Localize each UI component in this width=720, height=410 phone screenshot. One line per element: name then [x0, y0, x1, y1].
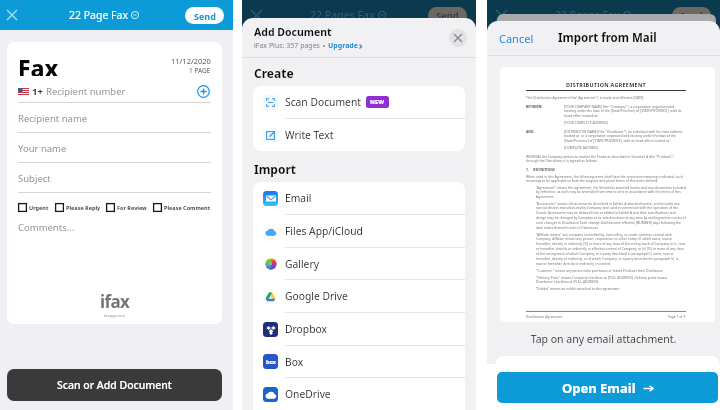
staticText: Tap on any email attachment.: [487, 332, 720, 346]
button[interactable]: box: [253, 346, 465, 377]
staticText: Recipient number: [46, 85, 126, 98]
staticText: DISTRIBUTION AGREEMENT: [526, 81, 686, 88]
button[interactable]: Files App/iCloud: [253, 215, 465, 247]
staticText: "Accessories" means the accessories desc…: [536, 201, 686, 229]
staticText: Recipient name: [18, 112, 88, 125]
staticText: Fax: [18, 52, 59, 76]
staticText: Files App/iCloud: [285, 224, 363, 238]
staticText: Dropbox: [285, 322, 327, 336]
staticText: 1+: [32, 85, 43, 98]
button[interactable]: Gallery: [253, 248, 465, 279]
staticText: "Delivery Point" means Company's facilit…: [536, 275, 686, 283]
staticText: WHEREAS the Company wishes to market the…: [526, 154, 686, 162]
staticText: Please Reply: [66, 204, 101, 211]
staticText: Urgent: [29, 204, 49, 211]
button[interactable]: Please Comment: [153, 203, 211, 212]
staticText: Import from Mail: [558, 30, 657, 46]
staticText: 1. DEFINITIONS: [526, 167, 555, 171]
staticText: "Customer" means any person who purchase…: [536, 268, 664, 272]
staticText: BETWEEN:: [526, 104, 564, 108]
staticText: iFax Plus: 357 pages: [254, 41, 320, 51]
staticText: "Affiliate means" any company controlled…: [536, 232, 686, 265]
button[interactable]: Recipient name: [18, 103, 211, 133]
button[interactable]: Cancel: [496, 28, 537, 49]
staticText: Subject: [18, 172, 51, 185]
button[interactable]: Urgent: [18, 203, 49, 212]
button[interactable]: Scan Document: [253, 86, 465, 118]
staticText: Comments...: [18, 221, 75, 234]
button[interactable]: Your name: [18, 133, 211, 163]
staticText: Import: [254, 161, 297, 177]
button[interactable]: Subject: [18, 163, 211, 193]
staticText: Write Text: [285, 128, 334, 142]
staticText: 1 PAGE: [189, 66, 211, 75]
staticText: [DISTRIBUTOR NAME] (the "Distributor"), …: [564, 129, 686, 142]
staticText: [YOUR COMPLETE ADDRESS]: [564, 120, 608, 124]
staticText: Send: [680, 9, 703, 22]
button[interactable]: Close: [1, 4, 23, 26]
button[interactable]: Open Email: [497, 372, 718, 403]
staticText: box: [266, 358, 276, 365]
staticText: OneDrive: [285, 387, 331, 401]
staticText: Box: [285, 355, 304, 369]
staticText: faxapp.com: [104, 313, 125, 318]
button[interactable]: Close: [449, 29, 467, 47]
staticText: NEW: [370, 98, 385, 106]
staticText: Your name: [18, 142, 67, 155]
button[interactable]: Google Drive: [253, 280, 465, 312]
staticText: "Exhibit" means an exhibit attached to t…: [536, 286, 621, 290]
button[interactable]: Send: [185, 7, 224, 24]
button[interactable]: Scan or Add Document: [7, 369, 222, 401]
button[interactable]: Upgrade: [328, 41, 363, 51]
button[interactable]: OneDrive: [253, 378, 465, 410]
staticText: Cancel: [499, 31, 534, 46]
staticText: Scan or Add Document: [57, 378, 172, 392]
staticText: Upgrade: [328, 41, 358, 51]
staticText: This Distribution Agreement (the' Agreem…: [526, 95, 645, 99]
staticText: "Agreement" means this agreement, the Sc…: [536, 185, 686, 198]
button[interactable]: For Review: [106, 203, 147, 212]
staticText: Scan Document: [285, 95, 361, 109]
staticText: [COMPLETE ADDRESS]: [564, 145, 599, 149]
staticText: Email: [285, 191, 312, 205]
staticText: [YOUR COMPANY NAME] (the "Company"), a c…: [564, 104, 686, 117]
staticText: Add Document: [254, 25, 332, 39]
staticText: ifax: [100, 290, 130, 313]
staticText: 22 Page Fax: [69, 8, 128, 22]
staticText: Send: [436, 9, 459, 22]
staticText: 22 Pages Fax: [310, 8, 375, 22]
staticText: Google Drive: [285, 289, 348, 303]
staticText: When used in this Agreement, the followi…: [526, 174, 686, 182]
staticText: 22 Pages Fax: [555, 8, 620, 22]
button[interactable]: Write Text: [253, 119, 465, 151]
staticText: AND:: [526, 129, 564, 133]
button[interactable]: Add recipient: [196, 84, 211, 99]
staticText: Open Email: [562, 379, 636, 397]
staticText: Please Comment: [164, 204, 211, 211]
staticText: Create: [254, 65, 294, 81]
staticText: Gallery: [285, 257, 319, 271]
staticText: 11/12/2020: [171, 56, 211, 66]
staticText: Send: [194, 10, 216, 22]
staticText: For Review: [117, 204, 147, 211]
button[interactable]: Please Reply: [55, 203, 101, 212]
staticText: Page 1 of 9: [668, 314, 686, 318]
button[interactable]: Email: [253, 182, 465, 214]
button[interactable]: Dropbox: [253, 313, 465, 345]
staticText: Distribution Agreement: [526, 314, 563, 318]
